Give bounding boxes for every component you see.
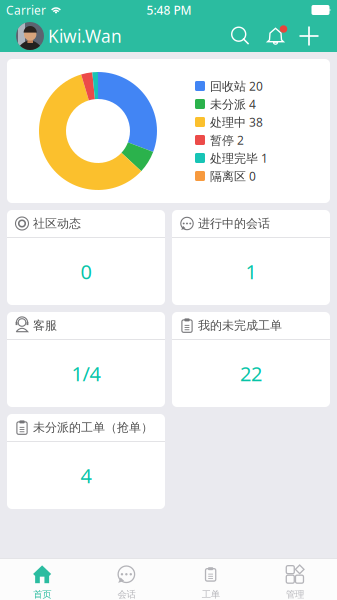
button[interactable]: 我的未完成工单 — [172, 312, 330, 407]
button[interactable]: 客服 — [7, 312, 165, 407]
staticText: 回收站 20 — [210, 78, 263, 94]
staticText: 进行中的会话 — [198, 216, 270, 231]
staticText: 首页 — [33, 589, 51, 600]
staticText: 隔离区 0 — [210, 168, 256, 184]
staticText: 管理 — [286, 589, 304, 600]
staticText: 0 — [80, 258, 91, 285]
staticText: 未分派 4 — [210, 96, 256, 112]
staticText: Kiwi.Wan — [48, 24, 122, 47]
button[interactable]: Notifications — [258, 20, 293, 52]
staticText: 未分派的工单（抢单） — [33, 420, 153, 435]
staticText: 会话 — [117, 589, 135, 600]
staticText: 1/4 — [71, 360, 100, 387]
button[interactable]: 未分派的工单（抢单） — [7, 414, 165, 509]
staticText: 工单 — [202, 589, 220, 600]
button[interactable]: 工单 — [168, 559, 253, 600]
button[interactable]: 会话 — [84, 559, 168, 600]
staticText: 处理中 38 — [210, 114, 263, 130]
button[interactable]: 进行中的会话 — [172, 210, 330, 305]
staticText: 我的未完成工单 — [198, 318, 282, 333]
button[interactable]: 社区动态 — [7, 210, 165, 305]
button[interactable]: Add — [293, 20, 325, 52]
staticText: 5:48 PM — [146, 2, 191, 18]
staticText: 处理完毕 1 — [210, 150, 268, 166]
button[interactable]: 首页 — [0, 559, 84, 600]
staticText: Carrier — [6, 2, 46, 18]
staticText: 1 — [245, 258, 256, 285]
staticText: 22 — [240, 360, 262, 387]
staticText: 客服 — [33, 318, 57, 333]
staticText: 4 — [80, 462, 91, 489]
staticText: 暂停 2 — [210, 132, 244, 148]
staticText: 社区动态 — [33, 216, 81, 231]
button[interactable]: 管理 — [253, 559, 337, 600]
button[interactable]: Search — [223, 20, 258, 52]
